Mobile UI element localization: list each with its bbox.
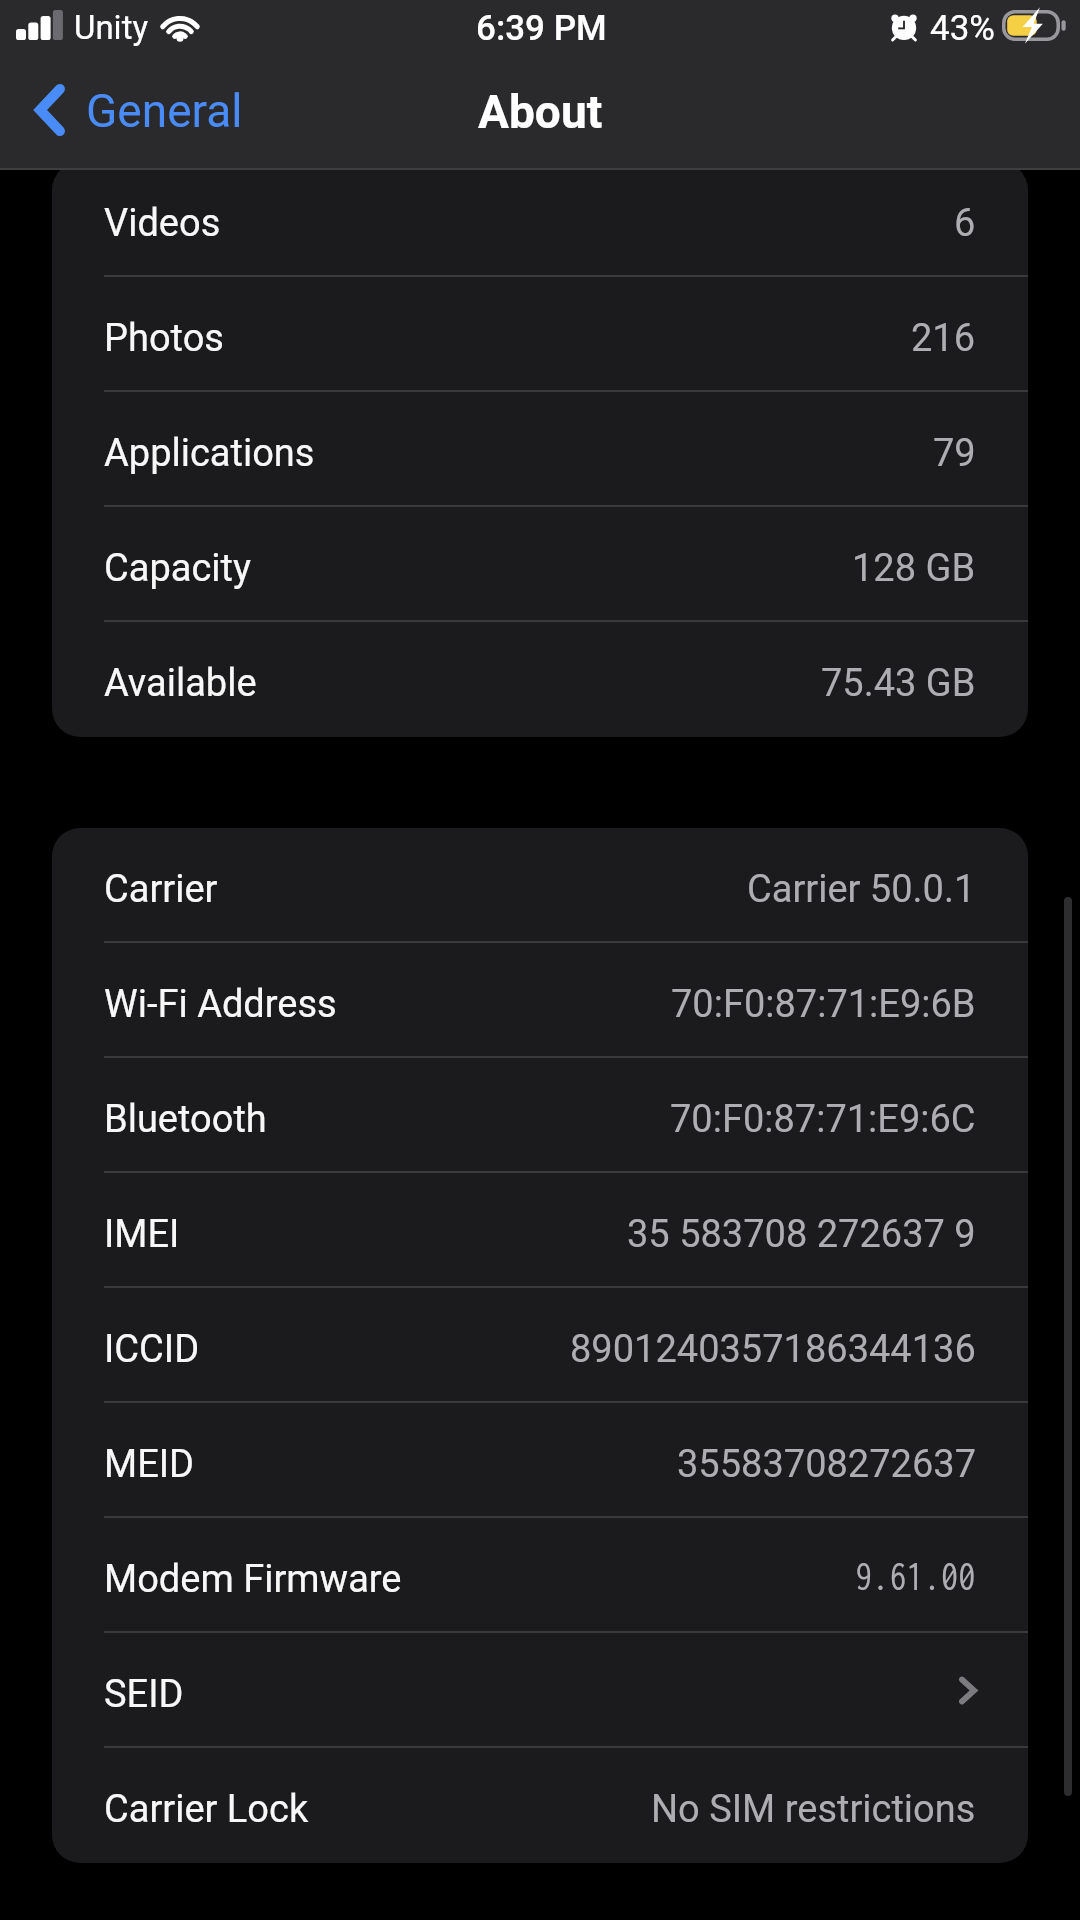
staticText: Applications [104,431,315,476]
staticText: 6 [954,201,976,246]
staticText: Carrier 50.0.1 [747,867,976,912]
staticText: 35583708272637 [677,1442,976,1487]
staticText: 43% [930,8,995,49]
button[interactable]: Carrier Lock [52,1748,1028,1863]
button[interactable]: Videos [52,162,1028,277]
other: Alarm set [888,8,920,42]
staticText: Bluetooth [104,1097,267,1142]
staticText: Capacity [104,546,251,591]
button[interactable]: Bluetooth [52,1058,1028,1173]
staticText: Wi-Fi Address [104,982,337,1027]
staticText: Carrier [104,867,218,912]
staticText: 79 [933,431,976,476]
button[interactable]: MEID [52,1403,1028,1518]
staticText: 35 583708 272637 9 [627,1212,976,1257]
staticText: MEID [104,1442,195,1487]
staticText: 9.61.00 [855,1553,976,1598]
staticText: 8901240357186344136 [570,1327,976,1372]
staticText: 70:F0:87:71:E9:6B [671,982,976,1027]
other: Cellular signal [16,10,63,40]
button[interactable]: Capacity [52,507,1028,622]
button[interactable]: Carrier [52,828,1028,943]
staticText: SEID [104,1672,184,1717]
staticText: About [478,85,603,139]
button[interactable]: Photos [52,277,1028,392]
button[interactable]: IMEI [52,1173,1028,1288]
staticText: ICCID [104,1327,200,1372]
staticText: 216 [911,316,976,361]
staticText: Available [104,661,257,706]
other: Battery 43 percent charging [1002,10,1072,41]
staticText: Modem Firmware [104,1557,402,1602]
button[interactable]: ICCID [52,1288,1028,1403]
other: Back to General [35,84,65,136]
button[interactable]: Available [52,622,1028,737]
button[interactable]: Applications [52,392,1028,507]
staticText: 6:39 PM [476,8,607,49]
other: Show SEID [960,1678,976,1703]
staticText: 75.43 GB [821,661,976,706]
staticText: Carrier Lock [104,1787,309,1832]
staticText: No SIM restrictions [651,1787,976,1832]
staticText: Unity [74,8,149,47]
staticText: Photos [104,316,224,361]
button[interactable]: SEID [52,1633,1028,1748]
staticText: IMEI [104,1212,180,1257]
staticText: General [86,84,243,138]
button[interactable]: Wi-Fi Address [52,943,1028,1058]
button[interactable]: Modem Firmware [52,1518,1028,1633]
other: Wi-Fi [158,10,202,41]
staticText: Videos [104,201,221,246]
button[interactable]: Back to General [22,70,259,150]
staticText: 128 GB [852,546,976,591]
staticText: 70:F0:87:71:E9:6C [670,1097,976,1142]
